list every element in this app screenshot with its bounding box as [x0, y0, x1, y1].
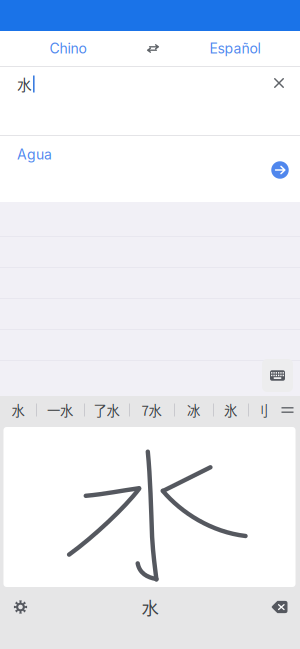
staticText: 冰: [187, 400, 200, 420]
button[interactable]: 氷: [213, 396, 248, 424]
button[interactable]: 刂: [248, 396, 275, 424]
button[interactable]: 水: [120, 587, 180, 627]
button[interactable]: Show translation: [265, 155, 295, 185]
staticText: 氷: [224, 400, 237, 420]
button[interactable]: Keyboard settings: [0, 587, 41, 627]
button[interactable]: 了水: [84, 396, 129, 424]
staticText: 水: [141, 594, 158, 620]
staticText: 刂: [255, 400, 268, 420]
staticText: Agua: [17, 146, 52, 163]
button[interactable]: 一水: [36, 396, 84, 424]
button[interactable]: Chino: [0, 31, 136, 66]
button[interactable]: 水: [0, 396, 36, 424]
button[interactable]: 冰: [174, 396, 213, 424]
button[interactable]: Español: [170, 31, 300, 66]
button[interactable]: Delete: [259, 587, 300, 627]
staticText: Chino: [49, 40, 86, 57]
staticText: 一水: [47, 400, 73, 420]
button[interactable]: Show keyboard: [262, 359, 293, 392]
staticText: 水: [11, 400, 24, 420]
button[interactable]: More candidates: [275, 396, 300, 424]
staticText: 水: [17, 73, 32, 95]
staticText: Español: [209, 40, 260, 57]
button[interactable]: Clear text: [261, 65, 297, 101]
button[interactable]: Swap languages: [136, 31, 170, 66]
staticText: 7水: [141, 400, 161, 420]
button[interactable]: 7水: [129, 396, 174, 424]
staticText: 了水: [93, 400, 119, 420]
